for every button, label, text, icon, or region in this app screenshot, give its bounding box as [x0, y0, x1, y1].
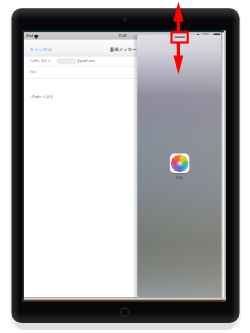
button[interactable]: iPad split view drag handle tutorial [0, 0, 250, 333]
